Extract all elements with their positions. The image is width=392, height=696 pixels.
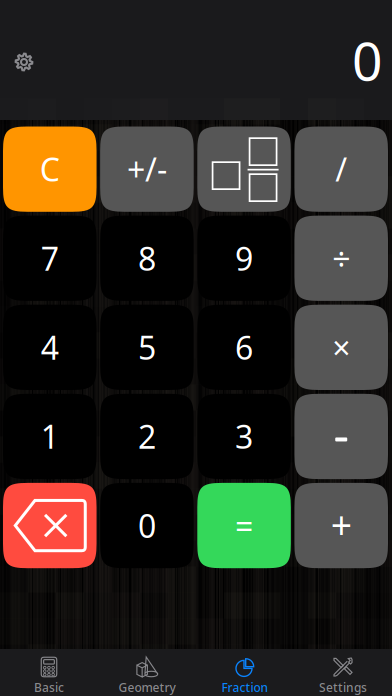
staticText: 0 (352, 25, 383, 95)
button[interactable]: 6 (197, 305, 291, 390)
staticText: 3 (235, 415, 253, 458)
staticText: 9 (235, 237, 253, 279)
button[interactable]: 8 (100, 216, 194, 301)
button[interactable]: Basic (0, 649, 98, 696)
button[interactable]: Settings (294, 649, 392, 696)
staticText: 8 (138, 237, 156, 279)
button[interactable]: 5 (100, 305, 194, 390)
button[interactable]: +/- (100, 126, 194, 212)
button[interactable]: = (197, 483, 291, 568)
staticText: Settings (319, 679, 367, 695)
button[interactable]: / (294, 126, 388, 212)
staticText: 5 (138, 326, 156, 369)
button[interactable]: Fraction (196, 649, 294, 696)
button[interactable]: 3 (197, 394, 291, 479)
button[interactable]: 7 (3, 216, 96, 301)
staticText: Basic (34, 679, 64, 695)
button[interactable]: C (3, 126, 96, 212)
button[interactable]: 2 (100, 394, 194, 479)
staticText: C (40, 148, 60, 190)
button[interactable]: × (294, 305, 388, 390)
staticText: 0 (138, 504, 156, 547)
staticText: = (235, 504, 253, 547)
button[interactable]: Delete (3, 483, 96, 568)
staticText: / (335, 148, 347, 190)
staticText: 1 (41, 415, 59, 458)
button[interactable]: 4 (3, 305, 96, 390)
button[interactable]: Geometry (98, 649, 196, 696)
button[interactable]: 9 (197, 216, 291, 301)
button[interactable]: + (294, 483, 388, 568)
staticText: 7 (41, 237, 59, 279)
button[interactable]: 0 (100, 483, 194, 568)
button[interactable]: 1 (3, 394, 96, 479)
staticText: + (331, 500, 352, 549)
button[interactable]: ÷ (294, 216, 388, 301)
button[interactable]: Minus (294, 394, 388, 479)
staticText: 6 (235, 326, 253, 369)
staticText: +/- (127, 148, 167, 190)
staticText: 2 (138, 415, 156, 458)
button[interactable]: Settings (2, 38, 46, 82)
staticText: Geometry (118, 679, 175, 695)
staticText: ÷ (332, 237, 350, 279)
button[interactable]: Mixed fraction (197, 126, 291, 212)
staticText: × (332, 326, 350, 369)
staticText: 4 (41, 326, 59, 369)
staticText: Fraction (221, 679, 268, 695)
